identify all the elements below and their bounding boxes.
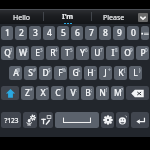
- staticText: 9: [117, 27, 122, 39]
- staticText: *: [30, 87, 33, 93]
- button[interactable]: P: [136, 46, 149, 60]
- staticText: 9: [130, 47, 133, 53]
- staticText: 7: [89, 27, 94, 39]
- button[interactable]: 6: [71, 26, 83, 40]
- button[interactable]: J: [99, 66, 112, 80]
- staticText: ': [61, 87, 63, 93]
- button[interactable]: Y: [76, 46, 89, 60]
- staticText: A: [13, 67, 19, 79]
- button[interactable]: T: [61, 46, 74, 60]
- staticText: 0: [131, 27, 136, 39]
- button[interactable]: G: [69, 66, 82, 80]
- button[interactable]: 3: [29, 26, 41, 40]
- button[interactable]: D: [39, 66, 52, 80]
- staticText: 3: [40, 47, 43, 53]
- staticText: ;: [91, 87, 93, 93]
- staticText: :: [76, 87, 78, 93]
- button[interactable]: Shift: [1, 86, 19, 100]
- button[interactable]: Symbols: [141, 26, 149, 40]
- button[interactable]: Emoji: [116, 112, 129, 128]
- button[interactable]: O: [121, 46, 134, 60]
- button[interactable]: S: [24, 66, 37, 80]
- staticText: ?: [121, 87, 123, 93]
- staticText: 5: [61, 27, 66, 39]
- staticText: 2: [19, 27, 24, 39]
- staticText: 8: [115, 47, 118, 53]
- staticText: G: [72, 67, 79, 79]
- button[interactable]: 5: [57, 26, 69, 40]
- staticText: V: [70, 87, 76, 99]
- button[interactable]: H: [84, 66, 97, 80]
- button[interactable]: I'm: [44, 9, 91, 24]
- staticText: 8: [103, 27, 108, 39]
- staticText: K: [118, 67, 124, 79]
- staticText: L: [133, 67, 138, 79]
- staticText: ?123: [4, 116, 19, 125]
- staticText: 1: [10, 47, 13, 53]
- button[interactable]: Voice input settings: [23, 112, 37, 128]
- button[interactable]: 9: [113, 26, 125, 40]
- button[interactable]: N: [96, 86, 109, 100]
- staticText: 6: [85, 47, 88, 53]
- button[interactable]: 8: [99, 26, 111, 40]
- button[interactable]: M: [111, 86, 124, 100]
- staticText: 0: [145, 47, 148, 53]
- button[interactable]: F: [54, 66, 67, 80]
- staticText: Q: [4, 47, 11, 59]
- staticText: W: [19, 47, 27, 59]
- staticText: S: [28, 67, 33, 79]
- staticText: J: [104, 67, 107, 79]
- button[interactable]: 7: [85, 26, 97, 40]
- staticText: O: [124, 47, 131, 59]
- staticText: +: [108, 67, 111, 73]
- button[interactable]: A: [9, 66, 22, 80]
- button[interactable]: I: [106, 46, 119, 60]
- button[interactable]: 0: [127, 26, 139, 40]
- button[interactable]: K: [114, 66, 127, 80]
- staticText: (: [124, 67, 126, 73]
- button[interactable]: More suggestions: [138, 13, 148, 22]
- staticText: ": [46, 87, 48, 93]
- button[interactable]: Q: [1, 46, 14, 60]
- button[interactable]: 1: [1, 26, 13, 40]
- staticText: Hello: [13, 13, 30, 23]
- button[interactable]: Backspace: [126, 86, 149, 100]
- button[interactable]: W: [16, 46, 29, 60]
- button[interactable]: Please: [92, 9, 135, 24]
- button[interactable]: 2: [15, 26, 27, 40]
- staticText: E: [35, 47, 40, 59]
- button[interactable]: Settings: [101, 112, 114, 128]
- button[interactable]: U: [91, 46, 104, 60]
- staticText: F: [58, 67, 63, 79]
- staticText: 6: [75, 27, 80, 39]
- button[interactable]: L: [129, 66, 142, 80]
- button[interactable]: C: [51, 86, 64, 100]
- button[interactable]: Z: [21, 86, 34, 100]
- button[interactable]: Enter: [131, 112, 149, 128]
- staticText: 1: [5, 27, 10, 39]
- staticText: !: [106, 87, 108, 93]
- button[interactable]: Space: [55, 112, 99, 128]
- staticText: @: [16, 67, 21, 73]
- button[interactable]: E: [31, 46, 44, 60]
- staticText: Please: [103, 13, 125, 23]
- button[interactable]: ?123: [1, 112, 21, 128]
- staticText: 4: [47, 27, 52, 39]
- button[interactable]: Hello: [0, 9, 43, 24]
- button[interactable]: R: [46, 46, 59, 60]
- staticText: 7: [100, 47, 103, 53]
- staticText: D: [42, 67, 49, 79]
- staticText: #: [33, 67, 36, 73]
- staticText: T: [65, 47, 70, 59]
- button[interactable]: V: [66, 86, 79, 100]
- staticText: -: [94, 67, 96, 73]
- staticText: C: [55, 87, 61, 99]
- button[interactable]: X: [36, 86, 49, 100]
- button[interactable]: 4: [43, 26, 55, 40]
- staticText: 2: [25, 47, 28, 53]
- button[interactable]: B: [81, 86, 94, 100]
- button[interactable]: Handwriting: [39, 112, 53, 128]
- staticText: %: [62, 67, 66, 73]
- staticText: Y: [80, 47, 85, 59]
- staticText: X: [40, 87, 46, 99]
